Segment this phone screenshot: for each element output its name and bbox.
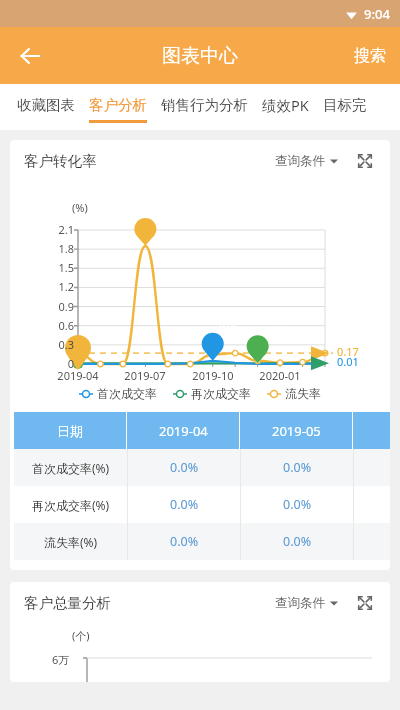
staticText: 2019-04 xyxy=(52,368,104,383)
staticText: 0.6 xyxy=(48,318,74,333)
staticText: 首次成交率(%) xyxy=(32,460,110,476)
staticText: 0.0% xyxy=(170,496,199,513)
staticText: 0.17 xyxy=(337,344,359,359)
button[interactable]: 流失率 xyxy=(265,384,323,403)
staticText: 2019-05 xyxy=(272,422,321,440)
staticText: (个) xyxy=(72,628,90,643)
staticText: 日期 xyxy=(57,423,83,439)
staticText: 6万 xyxy=(52,652,70,667)
button[interactable]: 首次成交率(%) xyxy=(14,449,390,486)
staticText: 0.01 xyxy=(269,323,299,336)
staticText: 2020-01 xyxy=(254,368,306,383)
staticText: 2019-07 xyxy=(119,368,171,383)
staticText: 再次成交率(%) xyxy=(32,497,110,513)
button[interactable]: Fullscreen xyxy=(352,148,378,174)
staticText: 收藏图表 xyxy=(17,96,75,114)
staticText: 0.01 xyxy=(337,354,359,369)
staticText: 1.2 xyxy=(48,279,74,294)
staticText: 0.3 xyxy=(48,337,74,352)
button[interactable]: 搜索 xyxy=(340,36,400,76)
staticText: 绩效PK xyxy=(262,95,309,115)
staticText: 搜索 xyxy=(354,46,386,66)
staticText: (%) xyxy=(72,200,88,215)
staticText: 9:04 xyxy=(364,5,390,23)
staticText: 2019-10 xyxy=(187,368,239,383)
staticText: 0.0% xyxy=(170,533,199,550)
button[interactable]: 查询条件 xyxy=(271,147,342,175)
staticText: 2019-04 xyxy=(159,422,208,440)
staticText: 流失率 xyxy=(285,386,321,401)
staticText: 0.9 xyxy=(48,299,74,314)
button[interactable]: 绩效PK xyxy=(255,84,316,130)
button[interactable]: 流失率(%) xyxy=(14,523,390,560)
staticText: 查询条件 xyxy=(275,595,325,611)
button[interactable]: 再次成交率(%) xyxy=(14,486,390,523)
button[interactable]: 首次成交率 xyxy=(77,384,159,403)
staticText: 图表中心 xyxy=(162,44,238,68)
staticText: 0.0% xyxy=(283,533,312,550)
staticText: 销售行为分析 xyxy=(161,96,248,114)
button[interactable]: 销售行为分析 xyxy=(154,84,255,130)
staticText: 首次成交率 xyxy=(97,386,157,401)
staticText: 0.05 xyxy=(214,320,244,333)
button[interactable]: 客户分析 xyxy=(82,84,154,130)
staticText: 客户转化率 xyxy=(24,152,97,170)
button[interactable]: 查询条件 xyxy=(271,589,342,617)
staticText: 0.0% xyxy=(170,459,199,476)
staticText: 流失率(%) xyxy=(44,534,98,550)
button[interactable]: Fullscreen xyxy=(352,590,378,616)
staticText: 目标完 xyxy=(323,96,367,114)
button[interactable]: 再次成交率 xyxy=(171,384,253,403)
button[interactable]: Back xyxy=(8,34,52,78)
staticText: 0.0% xyxy=(283,496,312,513)
button[interactable]: 目标完 xyxy=(316,84,374,130)
staticText: 查询条件 xyxy=(275,153,325,169)
staticText: 2.1 xyxy=(48,222,74,237)
staticText: 0 xyxy=(48,356,74,371)
staticText: 客户总量分析 xyxy=(24,594,111,612)
staticText: 再次成交率 xyxy=(191,386,251,401)
button[interactable]: 收藏图表 xyxy=(10,84,82,130)
staticText: 0.0% xyxy=(283,459,312,476)
staticText: 客户分析 xyxy=(89,96,147,114)
staticText: 1.8 xyxy=(48,241,74,256)
staticText: 1.5 xyxy=(48,260,74,275)
